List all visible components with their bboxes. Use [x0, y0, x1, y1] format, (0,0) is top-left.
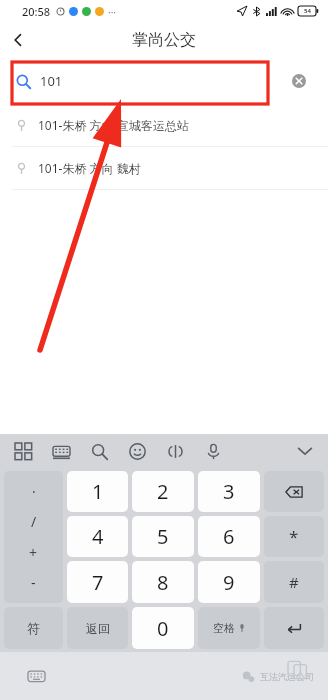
button[interactable]: 101	[16, 67, 63, 95]
staticText: 101-朱桥 方向 魏村	[38, 160, 141, 176]
staticText: 符	[27, 620, 40, 636]
staticText: 1	[92, 478, 104, 505]
button[interactable]: Handwriting	[158, 434, 192, 468]
staticText: 7	[92, 569, 104, 596]
staticText: 0	[157, 615, 169, 642]
staticText: 20:58	[22, 4, 51, 19]
button[interactable]: Hide keyboard	[288, 434, 322, 468]
button[interactable]: Clear	[287, 69, 311, 93]
button[interactable]: 1	[67, 471, 128, 512]
button[interactable]: 返回	[67, 607, 128, 649]
staticText: /	[31, 512, 37, 531]
staticText: 2	[157, 478, 169, 505]
staticText: 掌尚公交	[132, 30, 196, 50]
staticText: 空格	[213, 621, 235, 635]
staticText: 8	[157, 569, 169, 596]
button[interactable]: 4	[67, 516, 128, 557]
staticText: ·	[32, 482, 36, 501]
button[interactable]: 5	[132, 516, 194, 557]
button[interactable]: Enter	[264, 607, 324, 649]
button[interactable]: 101-朱桥 方向 宣城客运总站	[0, 104, 328, 146]
staticText: 互法汽运公司	[260, 671, 314, 682]
staticText: #	[289, 572, 299, 592]
staticText: -	[31, 573, 36, 592]
button[interactable]: Emoji	[120, 434, 154, 468]
staticText: +	[29, 543, 38, 562]
button[interactable]: Symbols	[4, 471, 63, 603]
button[interactable]: 8	[132, 561, 194, 603]
button[interactable]: *	[264, 516, 324, 557]
staticText: *	[289, 525, 299, 548]
button[interactable]: Search	[82, 434, 116, 468]
button[interactable]: 2	[132, 471, 194, 512]
button[interactable]: Back	[0, 22, 36, 58]
staticText: 5	[157, 523, 169, 550]
button[interactable]: Keyboard	[44, 434, 78, 468]
button[interactable]: 3	[198, 471, 260, 512]
staticText: ···	[108, 5, 117, 19]
staticText: 3	[223, 478, 235, 505]
staticText: 101-朱桥 方向 宣城客运总站	[38, 117, 189, 133]
button[interactable]: 6	[198, 516, 260, 557]
button[interactable]: Keyboard	[22, 662, 50, 690]
staticText: 返回	[86, 621, 110, 636]
button[interactable]: Voice input	[196, 434, 230, 468]
button[interactable]: 空格	[198, 607, 260, 649]
staticText: 4	[92, 523, 104, 550]
staticText: 54	[304, 7, 311, 15]
staticText: 9	[223, 569, 235, 596]
button[interactable]: 9	[198, 561, 260, 603]
button[interactable]: 0	[132, 607, 194, 649]
button[interactable]: Grid	[6, 434, 40, 468]
staticText: 6	[223, 523, 235, 550]
staticText: 101	[40, 72, 63, 90]
button[interactable]: 符	[4, 607, 63, 649]
button[interactable]: Backspace	[264, 471, 324, 512]
button[interactable]: 101-朱桥 方向 魏村	[0, 147, 328, 189]
button[interactable]: #	[264, 561, 324, 603]
button[interactable]: 7	[67, 561, 128, 603]
